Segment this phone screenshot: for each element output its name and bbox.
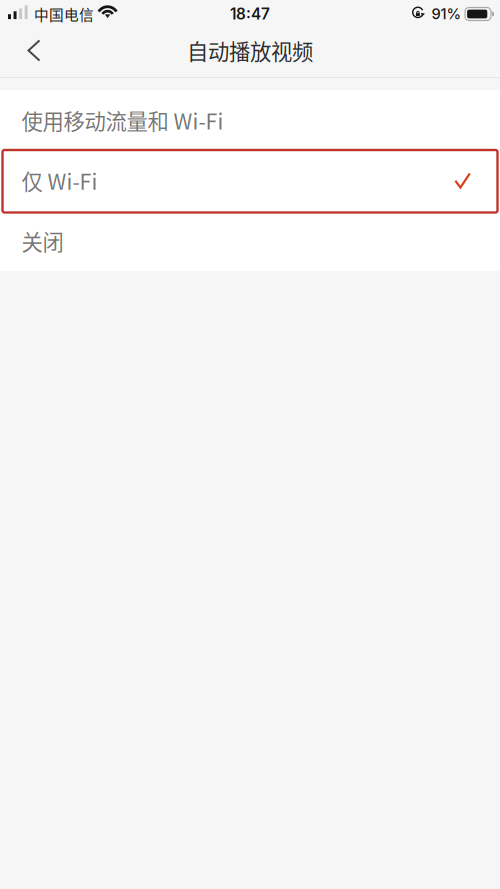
staticText: 中国电信: [34, 3, 94, 25]
staticText: 91%: [431, 5, 461, 23]
staticText: 仅 Wi-Fi: [21, 165, 97, 196]
staticText: 自动播放视频: [187, 35, 313, 66]
button[interactable]: 仅 Wi-Fi: [0, 150, 500, 211]
button[interactable]: Back: [10, 28, 58, 77]
staticText: 关闭: [21, 225, 63, 256]
staticText: 18:47: [230, 5, 270, 23]
staticText: 使用移动流量和 Wi-Fi: [21, 105, 223, 136]
button[interactable]: 关闭: [0, 211, 500, 271]
button[interactable]: 使用移动流量和 Wi-Fi: [0, 90, 500, 150]
